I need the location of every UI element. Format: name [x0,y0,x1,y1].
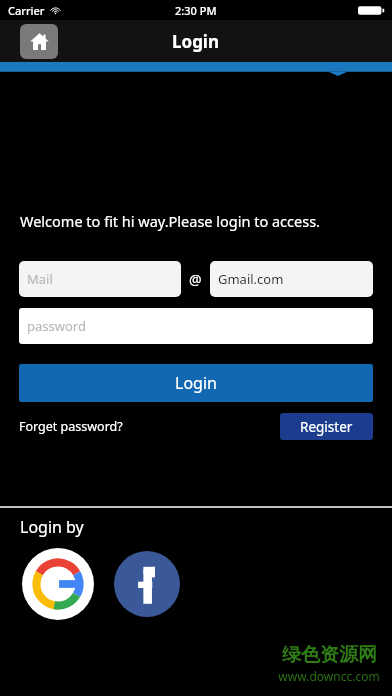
staticText: Login by [20,516,84,538]
button[interactable]: Mail [19,261,181,297]
button[interactable]: Login with Facebook [114,551,180,617]
staticText: Login [175,372,217,394]
staticText: Register [300,418,353,436]
staticText: Login [172,30,220,53]
staticText: Mail [27,270,53,288]
button[interactable]: Home [20,24,58,59]
button[interactable]: Forget password? [19,418,123,435]
staticText: @ [189,270,202,289]
staticText: Forget password? [19,418,123,435]
staticText: password [27,317,86,335]
button[interactable]: Register [280,413,373,440]
button[interactable]: Gmail.com [210,261,373,297]
staticText: 绿色资源网 [282,643,377,667]
staticText: Welcome to fit hi way.Please login to ac… [20,211,320,231]
staticText: www.downcc.com [278,668,380,684]
staticText: 2:30 PM [175,3,217,18]
button[interactable]: password [19,308,373,344]
staticText: Gmail.com [218,270,284,288]
staticText: Carrier [8,3,45,18]
button[interactable]: Login [19,364,373,402]
button[interactable]: Login with Google [22,548,94,620]
